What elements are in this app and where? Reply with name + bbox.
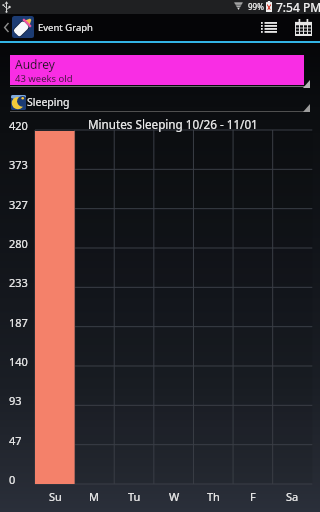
staticText: 327 <box>9 197 28 212</box>
staticText: 0 <box>9 472 16 487</box>
staticText: 7:54 PM <box>276 0 320 13</box>
button[interactable]: Back <box>0 14 12 41</box>
staticText: Minutes Sleeping 10/26 - 11/01 <box>88 116 258 132</box>
staticText: Sleeping <box>27 95 70 109</box>
staticText: 99% <box>248 1 264 12</box>
staticText: Tu <box>128 489 141 503</box>
staticText: Audrey <box>15 56 55 72</box>
staticText: 373 <box>9 157 28 172</box>
staticText: 233 <box>9 275 28 290</box>
button[interactable]: Audrey <box>10 55 310 88</box>
staticText: Th <box>207 489 220 503</box>
button[interactable]: List view <box>252 14 285 41</box>
staticText: Event Graph <box>38 21 93 34</box>
staticText: 93 <box>9 393 22 408</box>
staticText: Su <box>49 489 62 503</box>
staticText: W <box>169 489 180 503</box>
button[interactable]: Calendar <box>286 14 320 41</box>
staticText: 420 <box>9 118 28 133</box>
staticText: F <box>250 489 256 503</box>
staticText: 140 <box>9 354 28 369</box>
button[interactable]: Sleeping <box>10 89 310 113</box>
staticText: Sa <box>286 489 299 503</box>
staticText: 187 <box>9 315 28 330</box>
staticText: 280 <box>9 236 28 251</box>
staticText: 43 weeks old <box>15 72 73 85</box>
staticText: M <box>89 489 99 503</box>
staticText: 47 <box>9 433 22 448</box>
